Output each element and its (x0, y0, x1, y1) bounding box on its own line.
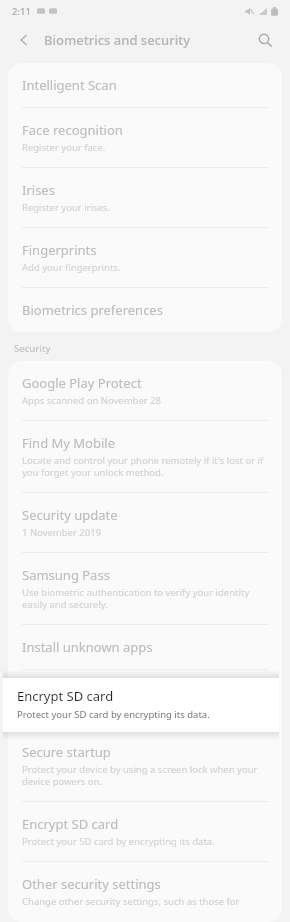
button[interactable]: Encrypt SD card (8, 802, 282, 862)
button[interactable]: Fingerprints (8, 228, 282, 288)
staticText: Protect your device by using a screen lo… (22, 763, 268, 788)
button[interactable]: Back (12, 28, 36, 52)
button[interactable]: Secure startup (8, 730, 282, 802)
staticText: Other security settings (22, 875, 161, 893)
button[interactable]: Security update (8, 493, 282, 553)
staticText: Keep your personal files and apps safe a… (22, 703, 248, 716)
staticText: Security (14, 342, 51, 355)
staticText: Intelligent Scan (22, 76, 117, 94)
staticText: Face recognition (22, 121, 123, 139)
staticText: Irises (22, 181, 55, 199)
staticText: Protect your SD card by encrypting its d… (17, 708, 210, 721)
staticText: Fingerprints (22, 241, 97, 259)
button[interactable]: Other security settings (8, 862, 282, 922)
staticText: Protect your SD card by encrypting its d… (22, 835, 215, 848)
button[interactable]: Face recognition (8, 108, 282, 168)
button[interactable]: Install unknown apps (8, 625, 282, 670)
staticText: Security update (22, 506, 118, 524)
staticText: Locate and control your phone remotely i… (22, 454, 268, 479)
button[interactable]: Encrypt SD card (3, 678, 279, 732)
button[interactable]: Samsung Pass (8, 553, 282, 625)
staticText: Find My Mobile (22, 434, 116, 452)
staticText: Encrypt SD card (22, 815, 119, 833)
staticText: Apps scanned on November 28 (22, 394, 162, 407)
button[interactable]: Find My Mobile (8, 421, 282, 493)
button[interactable]: Google Play Protect (8, 361, 282, 421)
staticText: Add your fingerprints. (22, 261, 121, 274)
staticText: Register your face. (22, 141, 106, 154)
button[interactable]: Biometrics preferences (8, 288, 282, 332)
staticText: 2:11 (12, 5, 31, 18)
staticText: Register your irises. (22, 201, 110, 214)
staticText: Secure startup (22, 743, 111, 761)
staticText: Use biometric authentication to verify y… (22, 586, 268, 611)
staticText: Secure Folder (22, 683, 106, 701)
button[interactable]: Intelligent Scan (8, 63, 282, 108)
staticText: 1 November 2019 (22, 526, 102, 539)
button[interactable]: Irises (8, 168, 282, 228)
button[interactable]: Secure Folder (8, 670, 282, 730)
staticText: Google Play Protect (22, 374, 142, 392)
staticText: Install unknown apps (22, 638, 153, 656)
staticText: Samsung Pass (22, 566, 110, 584)
button[interactable]: Search (252, 27, 278, 53)
staticText: Change other security settings, such as … (22, 895, 268, 909)
staticText: Biometrics and security (44, 31, 190, 49)
staticText: Biometrics preferences (22, 301, 163, 319)
staticText: Encrypt SD card (17, 687, 114, 705)
